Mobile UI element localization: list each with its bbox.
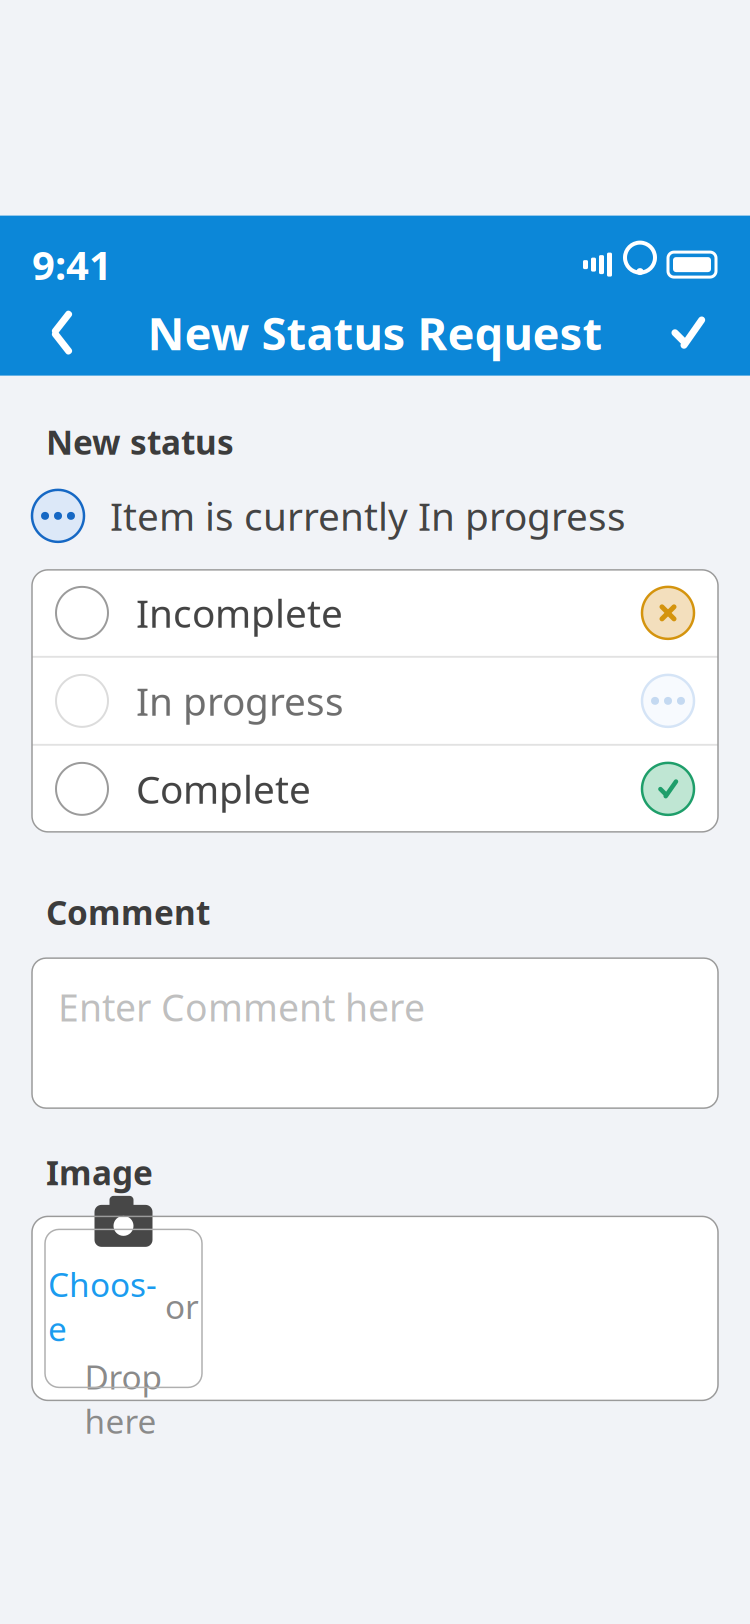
staticText: Comment [46, 890, 210, 934]
button[interactable]: In progress [32, 658, 718, 744]
button[interactable]: Choose image [45, 1229, 202, 1387]
button[interactable]: Incomplete [32, 570, 718, 656]
staticText: Choose [48, 1262, 157, 1350]
staticText: Item is currently In progress [110, 490, 626, 541]
staticText: In progress [136, 675, 344, 726]
staticText: Drop here [84, 1354, 162, 1443]
staticText: Image [46, 1150, 153, 1194]
staticText: New Status Request [147, 302, 602, 363]
staticText: Incomplete [136, 587, 343, 638]
staticText: 9:41 [32, 238, 112, 291]
button[interactable]: Back [24, 295, 100, 371]
staticText: Enter Comment here [58, 982, 425, 1032]
staticText: New status [46, 420, 234, 464]
button[interactable]: Submit [650, 295, 726, 371]
button[interactable]: Complete [32, 746, 718, 832]
staticText: or [165, 1284, 199, 1328]
staticText: Complete [136, 763, 311, 814]
button[interactable]: Enter Comment here [32, 958, 718, 1108]
